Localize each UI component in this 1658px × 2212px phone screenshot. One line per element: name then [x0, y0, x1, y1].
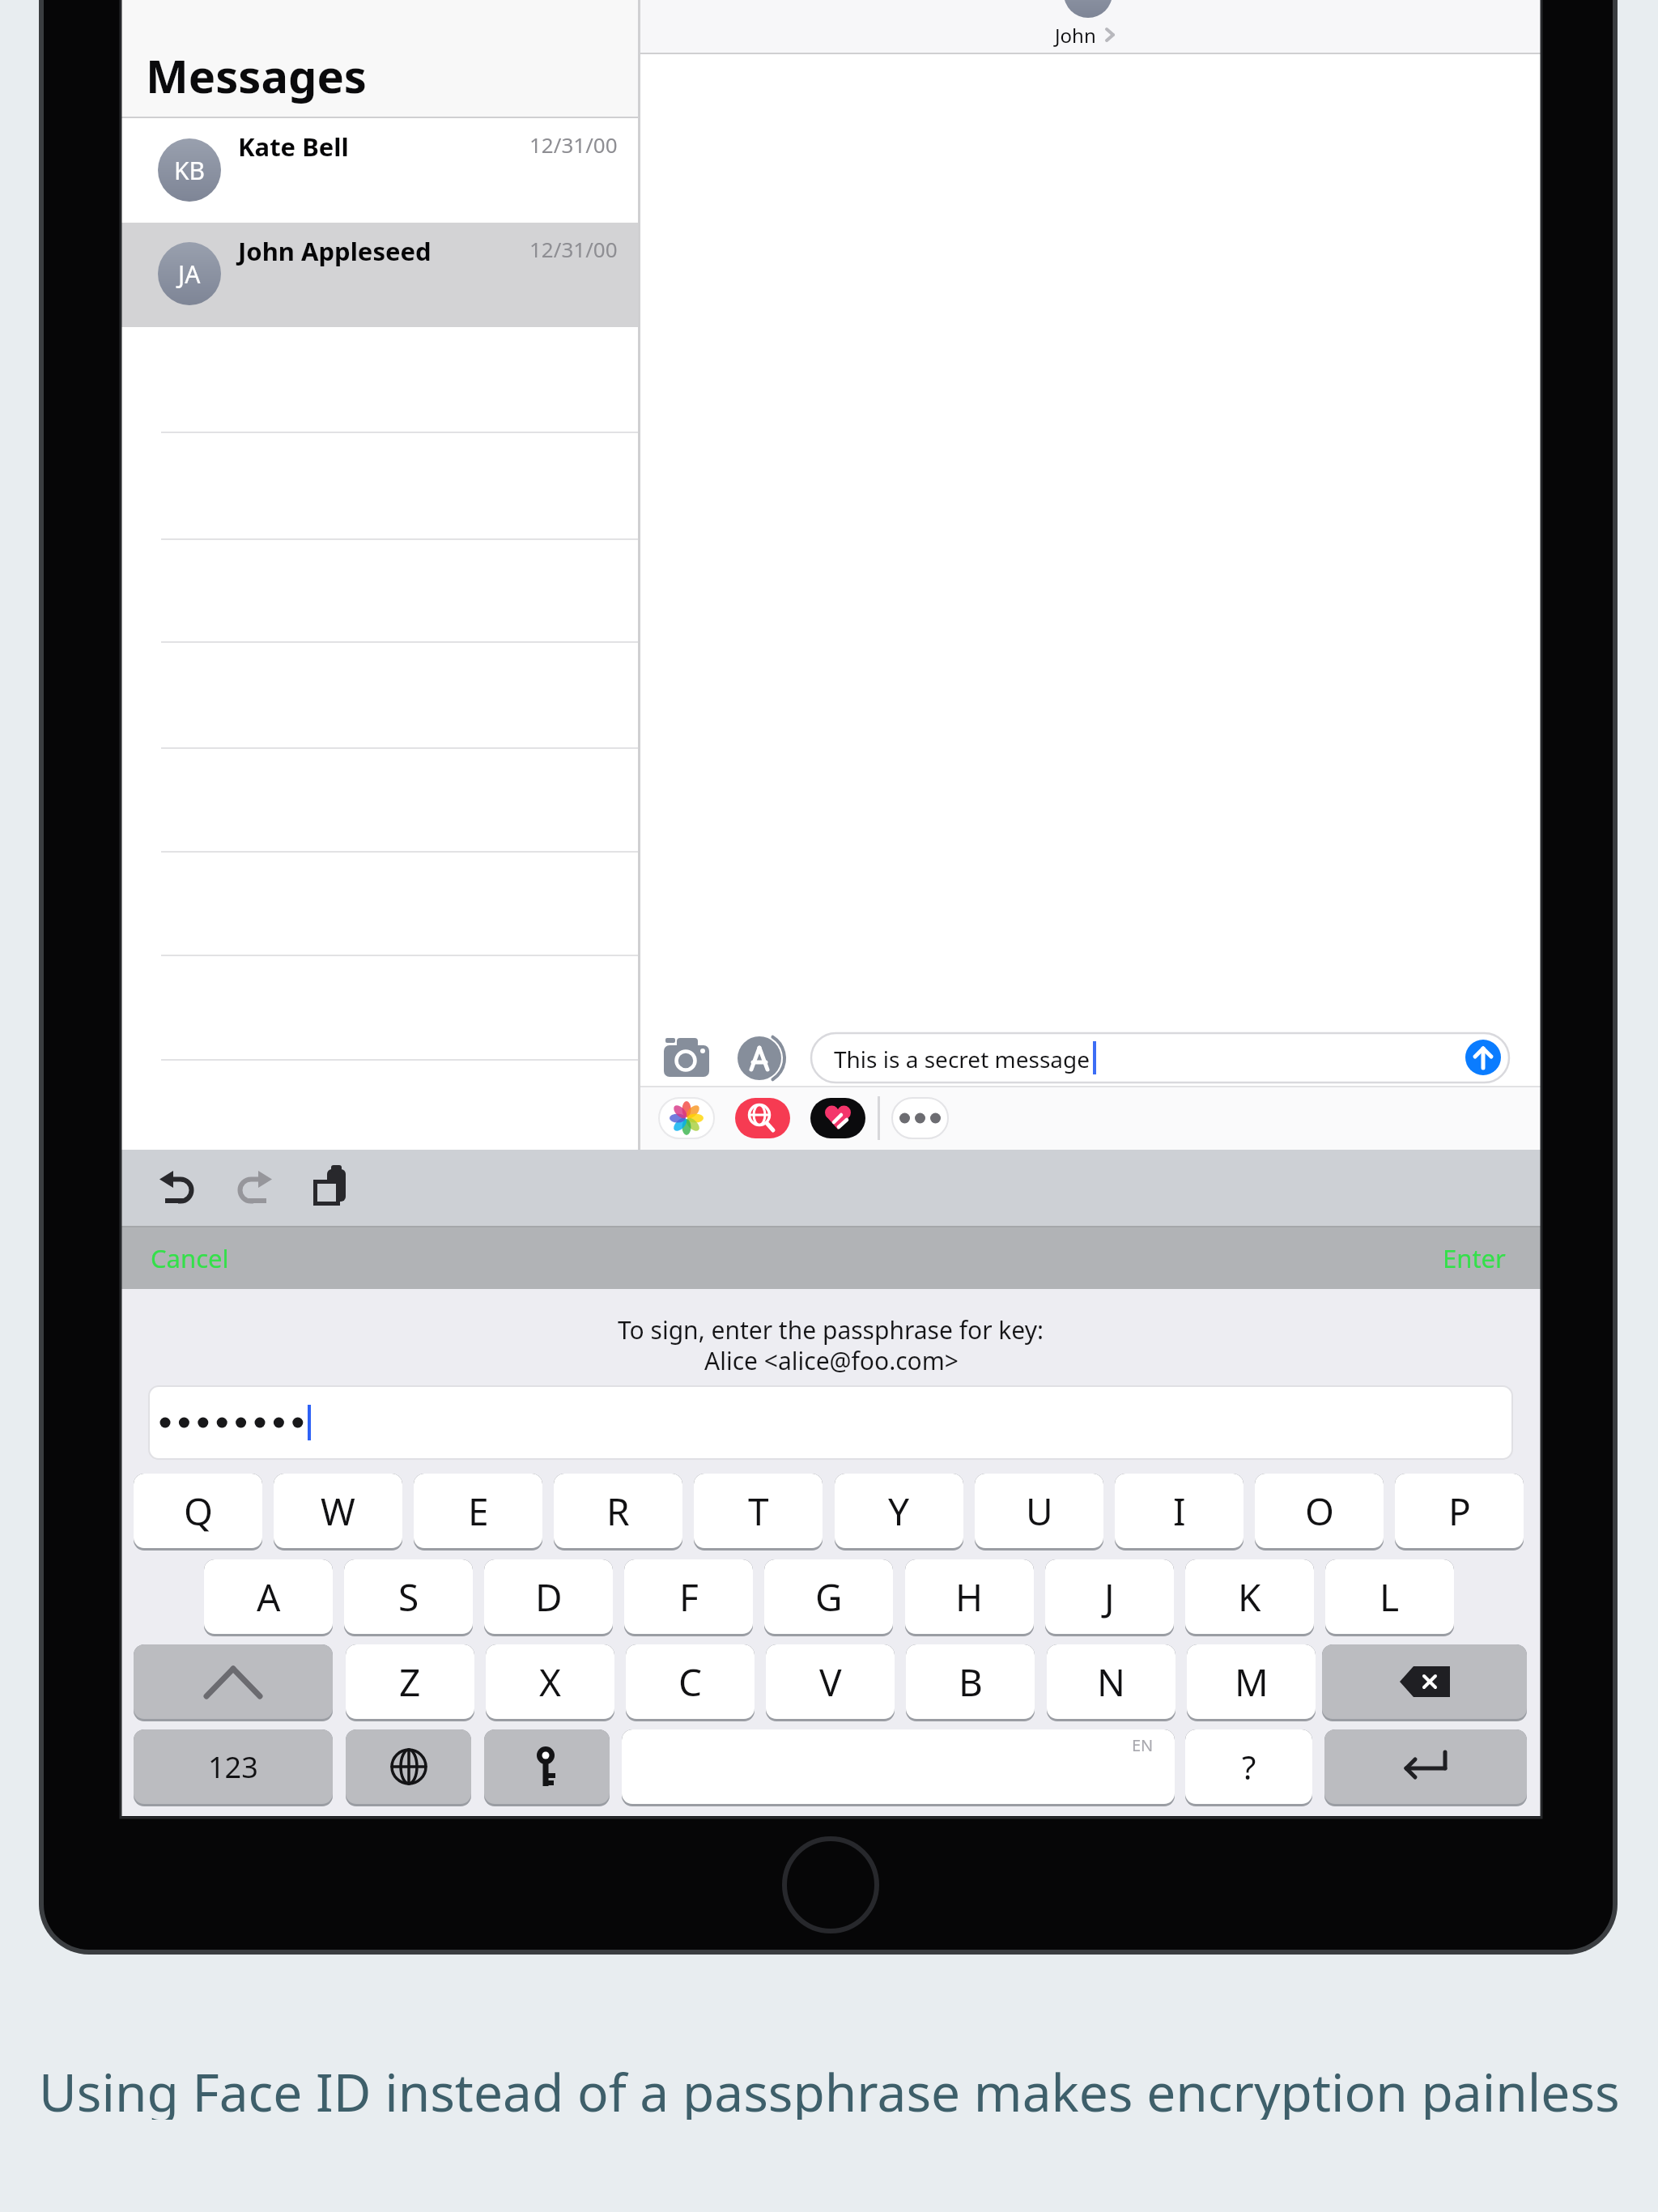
staticText: Using Face ID instead of a passphrase ma…: [39, 2057, 1620, 2120]
staticText: I: [1173, 1486, 1186, 1537]
button[interactable]: [1324, 1729, 1527, 1806]
button[interactable]: I: [1115, 1474, 1243, 1551]
staticText: G: [815, 1572, 843, 1623]
staticText: Q: [184, 1486, 213, 1537]
button[interactable]: Cancel: [151, 1234, 264, 1283]
staticText: W: [321, 1486, 355, 1537]
staticText: Kate Bell: [238, 130, 349, 164]
staticText: JA: [178, 257, 201, 291]
button[interactable]: K: [1185, 1559, 1314, 1636]
button[interactable]: V: [766, 1644, 895, 1721]
button[interactable]: Y: [835, 1474, 963, 1551]
button[interactable]: B: [906, 1644, 1035, 1721]
staticText: O: [1305, 1486, 1334, 1537]
button[interactable]: W: [274, 1474, 402, 1551]
button[interactable]: U: [975, 1474, 1103, 1551]
staticText: N: [1097, 1657, 1125, 1708]
staticText: X: [539, 1657, 561, 1708]
button[interactable]: R: [554, 1474, 682, 1551]
button[interactable]: [134, 1644, 333, 1721]
staticText: This is a secret message: [834, 1044, 1090, 1074]
button[interactable]: A: [204, 1559, 333, 1636]
staticText: 12/31/00: [529, 130, 618, 159]
button[interactable]: [784, 1839, 877, 1931]
button[interactable]: [149, 1386, 1512, 1459]
staticText: A: [257, 1572, 281, 1623]
button[interactable]: [1462, 1036, 1504, 1078]
staticText: S: [398, 1572, 419, 1623]
button[interactable]: ?: [1185, 1729, 1312, 1806]
staticText: 12/31/00: [529, 235, 618, 263]
button[interactable]: [121, 223, 640, 327]
button[interactable]: E: [414, 1474, 542, 1551]
button[interactable]: G: [764, 1559, 893, 1636]
button[interactable]: [1322, 1644, 1527, 1721]
staticText: To sign, enter the passphrase for key:: [618, 1313, 1044, 1346]
button[interactable]: [810, 1098, 865, 1138]
staticText: Alice <alice@foo.com>: [704, 1344, 959, 1376]
staticText: T: [748, 1486, 769, 1537]
staticText: C: [678, 1657, 703, 1708]
button[interactable]: N: [1047, 1644, 1175, 1721]
button[interactable]: [622, 1729, 1175, 1806]
staticText: KB: [174, 154, 206, 187]
button[interactable]: [346, 1729, 471, 1806]
button[interactable]: Q: [134, 1474, 262, 1551]
button[interactable]: X: [486, 1644, 614, 1721]
staticText: 123: [208, 1747, 258, 1787]
button[interactable]: [308, 1164, 351, 1210]
button[interactable]: D: [484, 1559, 613, 1636]
button[interactable]: H: [905, 1559, 1034, 1636]
staticText: V: [819, 1657, 842, 1708]
staticText: R: [606, 1486, 630, 1537]
button[interactable]: [733, 1033, 789, 1083]
staticText: K: [1238, 1572, 1261, 1623]
button[interactable]: [156, 1164, 202, 1210]
staticText: John Appleseed: [238, 234, 432, 268]
button[interactable]: T: [694, 1474, 823, 1551]
staticText: E: [468, 1486, 489, 1537]
staticText: U: [1026, 1486, 1053, 1537]
staticText: Messages: [146, 45, 367, 106]
button[interactable]: F: [624, 1559, 753, 1636]
button[interactable]: C: [626, 1644, 755, 1721]
staticText: ?: [1242, 1745, 1256, 1789]
button[interactable]: [121, 118, 640, 223]
button[interactable]: [735, 1098, 790, 1138]
button[interactable]: L: [1325, 1559, 1454, 1636]
button[interactable]: [484, 1729, 610, 1806]
button[interactable]: S: [344, 1559, 473, 1636]
staticText: D: [535, 1572, 563, 1623]
staticText: B: [959, 1657, 983, 1708]
staticText: Cancel: [151, 1241, 229, 1275]
staticText: Z: [399, 1657, 421, 1708]
button[interactable]: Z: [346, 1644, 474, 1721]
button[interactable]: [233, 1164, 278, 1210]
staticText: F: [679, 1572, 699, 1623]
button[interactable]: O: [1255, 1474, 1384, 1551]
button[interactable]: P: [1395, 1474, 1524, 1551]
button[interactable]: [657, 1035, 716, 1080]
staticText: J: [1104, 1572, 1115, 1623]
staticText: P: [1448, 1486, 1471, 1537]
button[interactable]: Enter: [1384, 1234, 1506, 1283]
button[interactable]: 123: [134, 1729, 333, 1806]
staticText: John: [1055, 22, 1096, 49]
button[interactable]: M: [1187, 1644, 1316, 1721]
staticText: M: [1235, 1657, 1269, 1708]
staticText: Enter: [1443, 1241, 1506, 1275]
button[interactable]: [659, 1098, 714, 1138]
staticText: Y: [888, 1486, 910, 1537]
button[interactable]: J: [1045, 1559, 1174, 1636]
button[interactable]: [892, 1098, 948, 1138]
staticText: L: [1380, 1572, 1400, 1623]
staticText: EN: [1132, 1734, 1154, 1756]
staticText: H: [955, 1572, 984, 1623]
